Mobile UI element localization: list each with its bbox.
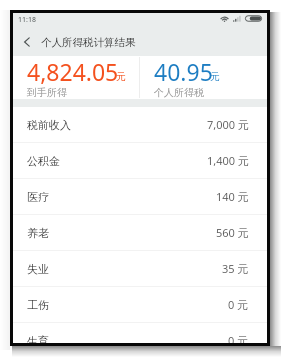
staticText: 40.95 [154, 56, 213, 87]
staticText: 0 元 [228, 333, 249, 343]
button[interactable]: 40.95 [140, 56, 267, 99]
staticText: 35 元 [222, 261, 249, 276]
button[interactable]: 工伤 [13, 287, 267, 322]
staticText: 个人所得税 [154, 86, 204, 99]
staticText: 140 元 [216, 189, 249, 204]
staticText: 元 [116, 70, 126, 83]
staticText: 工伤 [27, 298, 49, 312]
staticText: 560 元 [216, 225, 249, 240]
button[interactable]: 生育 [13, 323, 267, 343]
button[interactable]: 失业 [13, 251, 267, 286]
staticText: 元 [210, 70, 220, 83]
staticText: 公积金 [27, 154, 60, 168]
button[interactable]: 公积金 [13, 143, 267, 178]
staticText: 1,400 元 [207, 153, 249, 168]
staticText: 养老 [27, 226, 49, 240]
staticText: 0 元 [228, 297, 249, 312]
staticText: 生育 [27, 334, 49, 343]
button[interactable]: 养老 [13, 215, 267, 250]
staticText: 失业 [27, 262, 49, 276]
button[interactable]: 税前收入 [13, 107, 267, 142]
staticText: 11:18 [18, 15, 36, 25]
staticText: 到手所得 [27, 86, 67, 99]
button[interactable]: Back [13, 28, 41, 56]
staticText: 4,824.05 [27, 56, 119, 87]
staticText: 医疗 [27, 190, 49, 204]
button[interactable]: 医疗 [13, 179, 267, 214]
staticText: 税前收入 [27, 118, 71, 132]
staticText: 个人所得税计算结果 [41, 36, 136, 49]
staticText: 7,000 元 [207, 117, 249, 132]
button[interactable]: 4,824.05 [13, 56, 139, 99]
